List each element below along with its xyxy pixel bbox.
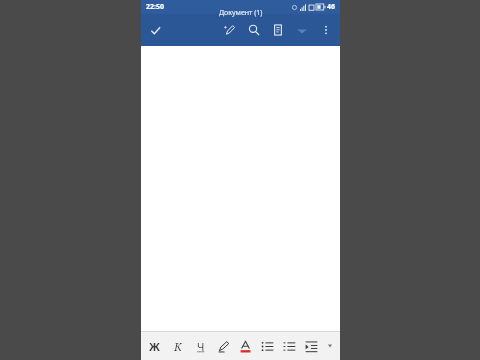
staticText: Документ (1) <box>219 8 263 18</box>
button[interactable]: Italic <box>166 332 189 360</box>
button[interactable]: Bulleted list <box>256 332 278 360</box>
button[interactable]: Undo <box>290 18 314 42</box>
button[interactable]: More options <box>314 18 338 42</box>
staticText: Ж <box>149 339 160 354</box>
staticText: К <box>174 339 182 354</box>
button[interactable]: Increase indent <box>300 332 322 360</box>
staticText: Ч <box>197 339 205 354</box>
button[interactable]: Highlight <box>212 332 234 360</box>
staticText: 22:50 <box>146 2 164 12</box>
button[interactable]: Ink <box>218 18 242 42</box>
button[interactable]: Numbered list <box>278 332 300 360</box>
button[interactable]: Search <box>242 18 266 42</box>
button[interactable]: Done <box>144 19 166 41</box>
button[interactable]: Bold <box>143 332 166 360</box>
button[interactable]: More formatting <box>322 332 338 360</box>
button[interactable]: Underline <box>189 332 212 360</box>
button[interactable]: Mobile view <box>266 18 290 42</box>
button[interactable]: Font color <box>234 332 256 360</box>
staticText: 46 <box>327 2 336 12</box>
